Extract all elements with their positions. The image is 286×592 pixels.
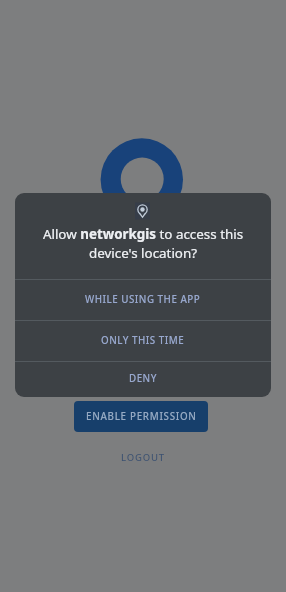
button[interactable]: ENABLE PERMISSION bbox=[74, 401, 208, 432]
button[interactable]: DENY bbox=[15, 362, 271, 397]
button[interactable]: WHILE USING THE APP bbox=[15, 280, 271, 320]
staticText: DENY bbox=[129, 372, 157, 385]
staticText: LOGOUT bbox=[121, 451, 165, 464]
button[interactable]: LOGOUT bbox=[113, 447, 173, 467]
staticText: WHILE USING THE APP bbox=[85, 293, 201, 306]
staticText: ONLY THIS TIME bbox=[101, 334, 185, 347]
button[interactable]: ONLY THIS TIME bbox=[15, 321, 271, 361]
staticText: ENABLE PERMISSION bbox=[86, 410, 197, 423]
staticText: Allow networkgis to access this device's… bbox=[15, 225, 271, 262]
